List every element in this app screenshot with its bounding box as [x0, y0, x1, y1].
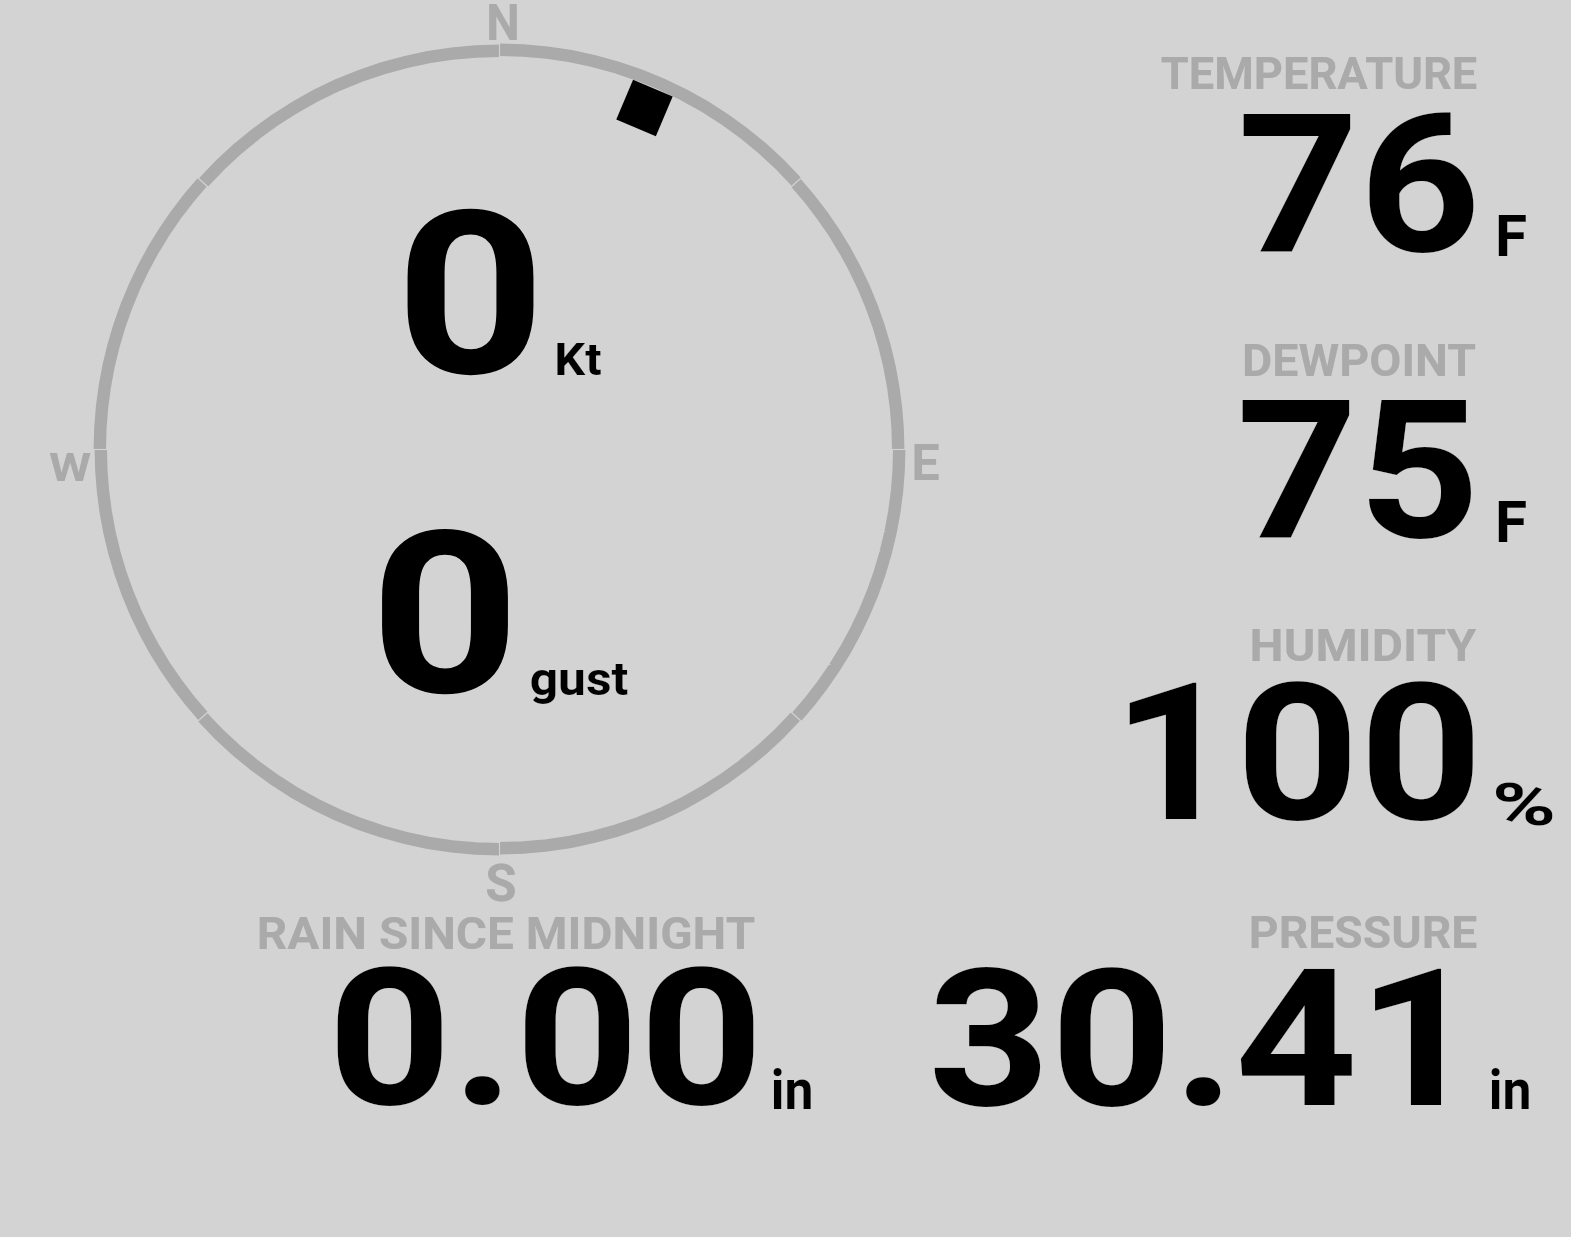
- staticText: 0.00: [327, 927, 764, 1151]
- button[interactable]: Humidity 100 percent: [1060, 608, 1571, 854]
- staticText: HUMIDITY: [1249, 620, 1477, 672]
- staticText: 75: [1236, 358, 1480, 584]
- button[interactable]: Temperature 76 degrees Fahrenheit: [1060, 36, 1571, 282]
- staticText: Kt: [554, 333, 602, 386]
- staticText: RAIN SINCE MIDNIGHT: [257, 908, 755, 960]
- staticText: PRESSURE: [1248, 907, 1478, 959]
- button[interactable]: Dewpoint 75 degrees Fahrenheit: [1060, 322, 1571, 568]
- staticText: %: [1492, 770, 1556, 839]
- staticText: W: [49, 445, 91, 490]
- staticText: F: [1495, 202, 1527, 270]
- button[interactable]: Wind 0 knots, gusting 0, from the north-…: [0, 0, 910, 900]
- staticText: 76: [1237, 72, 1481, 298]
- staticText: E: [911, 434, 940, 493]
- staticText: 30.41: [928, 928, 1480, 1152]
- staticText: 100: [1112, 642, 1483, 866]
- staticText: in: [770, 1058, 814, 1122]
- staticText: 0: [370, 482, 520, 747]
- staticText: in: [1488, 1058, 1532, 1122]
- staticText: TEMPERATURE: [1161, 48, 1477, 100]
- staticText: F: [1495, 488, 1527, 556]
- staticText: gust: [529, 652, 629, 706]
- staticText: N: [486, 0, 520, 53]
- button[interactable]: Pressure 30.41 inches: [880, 895, 1571, 1141]
- button[interactable]: Rain since midnight 0.00 inches: [190, 895, 880, 1141]
- staticText: S: [485, 854, 517, 914]
- staticText: 0: [395, 161, 546, 428]
- staticText: DEWPOINT: [1242, 335, 1476, 387]
